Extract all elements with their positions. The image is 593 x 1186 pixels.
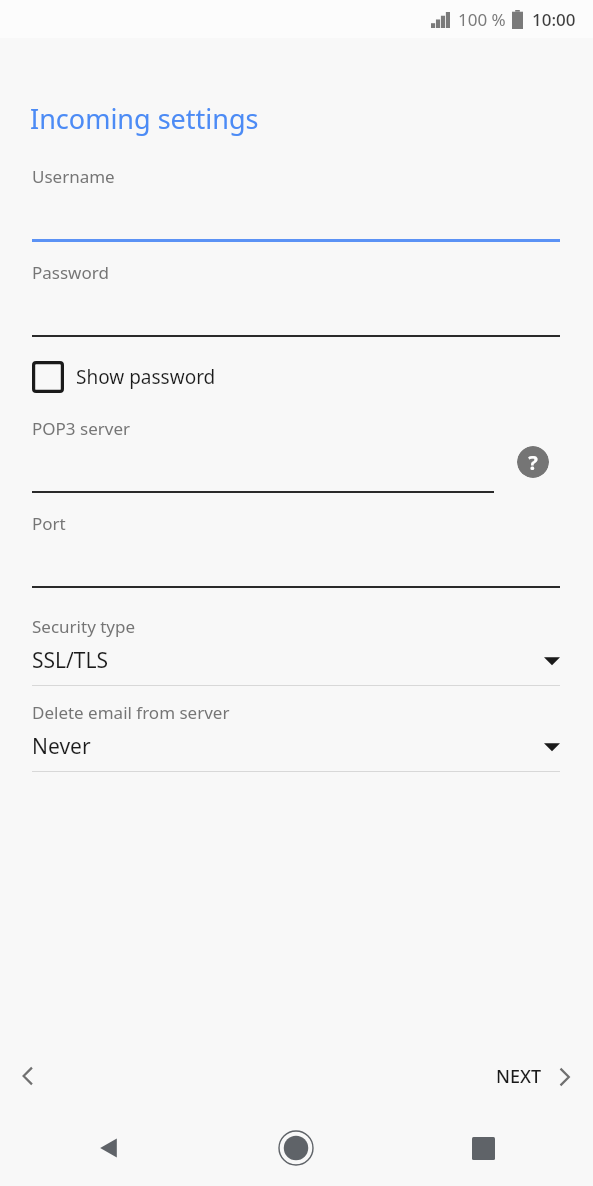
button[interactable]: Back bbox=[6, 1054, 50, 1098]
staticText: Password bbox=[32, 261, 109, 284]
staticText: Delete email from server bbox=[32, 701, 230, 724]
button[interactable]: Security type bbox=[0, 615, 593, 686]
button[interactable]: NEXT bbox=[490, 1056, 581, 1097]
button[interactable]: Back bbox=[81, 1120, 137, 1176]
button[interactable]: Delete email from server bbox=[0, 701, 593, 772]
staticText: Never bbox=[32, 732, 91, 761]
button[interactable]: Show password bbox=[32, 361, 216, 393]
staticText: Show password bbox=[76, 364, 216, 390]
button[interactable]: Username bbox=[0, 165, 593, 242]
staticText: 100 % bbox=[458, 8, 506, 31]
button[interactable]: Help bbox=[517, 446, 549, 478]
button[interactable]: Port bbox=[0, 512, 593, 588]
staticText: 10:00 bbox=[532, 8, 576, 31]
staticText: NEXT bbox=[496, 1064, 542, 1089]
staticText: SSL/TLS bbox=[32, 646, 109, 675]
staticText: Port bbox=[32, 512, 66, 535]
staticText: ? bbox=[528, 449, 538, 476]
button[interactable]: Home bbox=[268, 1120, 324, 1176]
staticText: POP3 server bbox=[32, 417, 130, 440]
staticText: Incoming settings bbox=[30, 100, 259, 137]
staticText: Security type bbox=[32, 615, 136, 638]
staticText: Username bbox=[32, 165, 115, 188]
button[interactable]: Password bbox=[0, 261, 593, 337]
button[interactable]: Recent apps bbox=[455, 1120, 511, 1176]
